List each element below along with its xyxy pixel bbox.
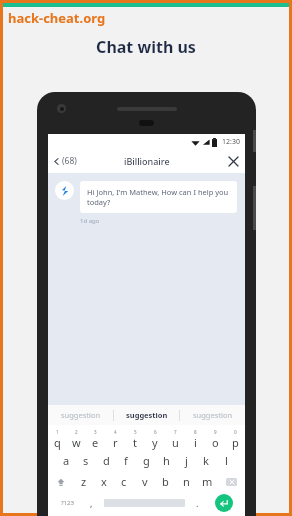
staticText: l (225, 453, 228, 468)
button[interactable]: s (76, 450, 96, 471)
staticText: z (81, 474, 87, 489)
staticText: , (90, 497, 93, 509)
button[interactable]: 9 (205, 428, 225, 450)
staticText: suggestion (61, 410, 101, 420)
staticText: d (103, 453, 110, 468)
button[interactable]: z (74, 471, 94, 492)
staticText: j (185, 453, 188, 468)
button[interactable]: a (57, 450, 76, 471)
staticText: h (163, 453, 170, 468)
staticText: w (72, 435, 81, 450)
staticText: x (101, 474, 107, 489)
staticText: c (121, 474, 127, 489)
button[interactable]: suggestion (180, 405, 245, 425)
button[interactable]: v (134, 471, 155, 492)
staticText: iBillionaire (124, 155, 170, 167)
staticText: a (63, 453, 70, 468)
button[interactable]: 2 (67, 428, 86, 450)
button[interactable]: c (114, 471, 134, 492)
staticText: m (202, 474, 213, 489)
staticText: n (183, 474, 190, 489)
staticText: e (92, 435, 99, 450)
button[interactable]: 4 (105, 428, 125, 450)
staticText: . (196, 497, 199, 509)
staticText: 12:30 (222, 137, 240, 147)
staticText: 7 (174, 429, 177, 435)
button[interactable]: ?123 (52, 492, 82, 513)
staticText: 1 (56, 429, 59, 435)
button[interactable]: 6 (145, 428, 165, 450)
button[interactable]: d (96, 450, 116, 471)
staticText: 9 (214, 429, 217, 435)
button[interactable]: suggestion (48, 405, 113, 425)
button[interactable]: 7 (165, 428, 185, 450)
staticText: k (203, 453, 209, 468)
staticText: 4 (114, 429, 117, 435)
staticText: q (54, 435, 61, 450)
button[interactable]: (68) (48, 151, 83, 171)
staticText: f (124, 453, 128, 468)
staticText: y (152, 435, 158, 450)
staticText: v (142, 474, 148, 489)
staticText: o (212, 435, 219, 450)
button[interactable]: b (155, 471, 176, 492)
staticText: 3 (94, 429, 97, 435)
button[interactable]: j (176, 450, 196, 471)
staticText: ?123 (61, 499, 74, 507)
button[interactable]: , (82, 492, 100, 513)
staticText: g (143, 453, 150, 468)
button[interactable]: suggestion (114, 405, 179, 425)
button[interactable]: f (116, 450, 136, 471)
button[interactable]: Close (222, 150, 245, 173)
staticText: suggestion (126, 410, 168, 420)
button[interactable]: Backspace (218, 471, 245, 492)
button[interactable]: 5 (125, 428, 145, 450)
staticText: s (83, 453, 89, 468)
staticText: 6 (154, 429, 157, 435)
staticText: Hi John, I'm Mathew, How can I help you … (87, 187, 230, 207)
staticText: 0 (234, 429, 237, 435)
button[interactable]: 0 (225, 428, 245, 450)
staticText: (68) (62, 155, 77, 167)
button[interactable]: k (196, 450, 216, 471)
staticText: Chat with us (0, 36, 292, 58)
staticText: 1d ago (80, 217, 100, 225)
button[interactable]: l (216, 450, 236, 471)
staticText: 5 (134, 429, 137, 435)
button[interactable]: x (94, 471, 114, 492)
button[interactable]: m (197, 471, 218, 492)
button[interactable]: Shift (48, 471, 74, 492)
staticText: t (133, 435, 137, 450)
staticText: b (162, 474, 169, 489)
staticText: 8 (194, 429, 197, 435)
staticText: i (194, 435, 197, 450)
button[interactable]: g (136, 450, 156, 471)
staticText: r (113, 435, 118, 450)
button[interactable]: 3 (86, 428, 105, 450)
staticText: suggestion (193, 410, 233, 420)
staticText: hack-cheat.org (8, 9, 106, 27)
button[interactable]: 1 (48, 428, 67, 450)
button[interactable]: Space (100, 492, 188, 513)
button[interactable]: n (176, 471, 197, 492)
button[interactable]: 8 (185, 428, 205, 450)
button[interactable]: Send (206, 492, 241, 513)
staticText: p (232, 435, 239, 450)
button[interactable]: h (156, 450, 176, 471)
button[interactable]: . (188, 492, 206, 513)
staticText: u (172, 435, 179, 450)
staticText: 2 (75, 429, 78, 435)
